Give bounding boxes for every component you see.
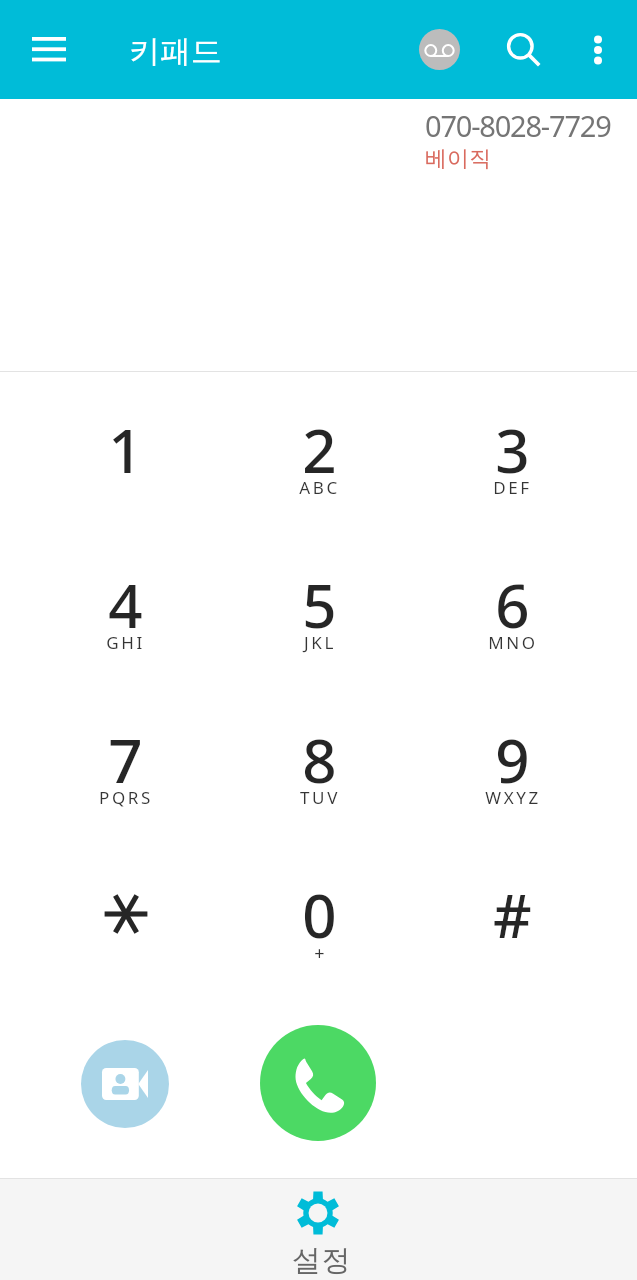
staticText: GHI	[106, 631, 145, 654]
button[interactable]: 4	[29, 535, 222, 690]
staticText: 9	[495, 719, 530, 801]
staticText: DEF	[493, 476, 532, 499]
staticText: 3	[495, 409, 530, 491]
staticText: 설정	[292, 1242, 352, 1279]
staticText: WXYZ	[485, 786, 541, 809]
staticText: 2	[302, 409, 337, 491]
button[interactable]: Open navigation menu	[18, 19, 80, 81]
button[interactable]: 설정	[0, 1179, 637, 1280]
button[interactable]: 1	[29, 380, 222, 535]
button[interactable]: 8	[223, 690, 416, 845]
staticText: 4	[108, 564, 143, 646]
button[interactable]: 9	[416, 690, 609, 845]
staticText: 070-8028-7729	[425, 106, 611, 145]
staticText: MNO	[488, 631, 538, 654]
button[interactable]: 3	[416, 380, 609, 535]
button[interactable]: 2	[223, 380, 416, 535]
button[interactable]: Video call	[81, 1040, 169, 1128]
button[interactable]: 5	[223, 535, 416, 690]
button[interactable]: 7	[29, 690, 222, 845]
staticText: 1	[108, 409, 143, 491]
button[interactable]: #	[416, 845, 609, 1000]
button[interactable]: Call	[260, 1025, 376, 1141]
staticText: 6	[495, 564, 530, 646]
staticText: ABC	[299, 476, 340, 499]
staticText: PQRS	[99, 786, 153, 809]
button[interactable]	[29, 845, 222, 1000]
staticText: 5	[302, 564, 337, 646]
staticText: +	[314, 941, 325, 966]
button[interactable]: 6	[416, 535, 609, 690]
staticText: 0	[302, 874, 337, 956]
staticText: TUV	[300, 786, 340, 809]
staticText: #	[493, 874, 532, 956]
staticText: 8	[302, 719, 337, 801]
button[interactable]: More options	[572, 24, 624, 76]
staticText: 7	[108, 719, 143, 801]
staticText: JKL	[304, 631, 336, 654]
staticText: 베이직	[425, 145, 491, 173]
staticText: 키패드	[129, 32, 222, 71]
button[interactable]: 0	[223, 845, 416, 1000]
button[interactable]: Search	[494, 20, 552, 78]
button[interactable]: Voicemail	[411, 21, 468, 78]
